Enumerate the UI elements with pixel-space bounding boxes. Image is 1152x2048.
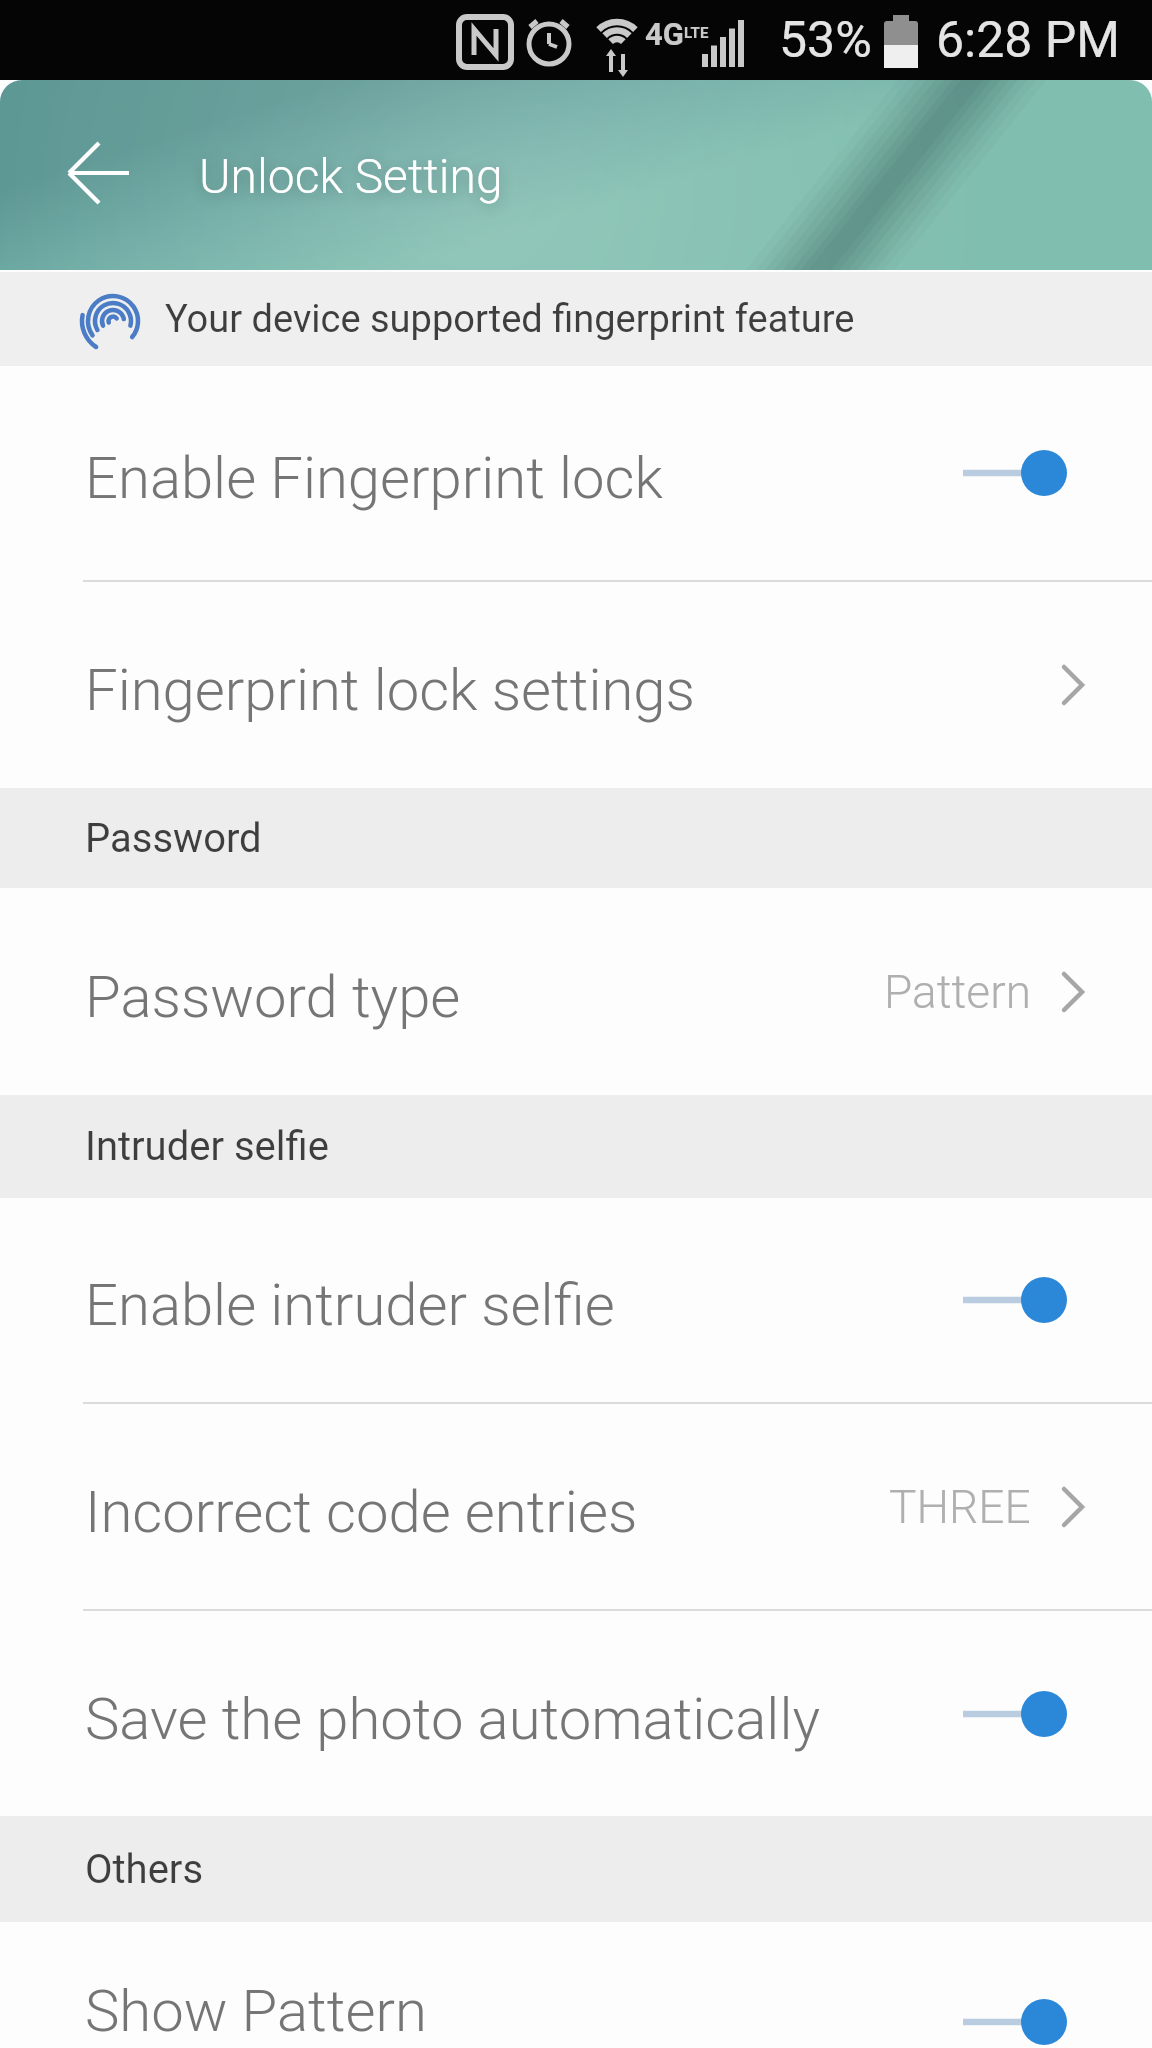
staticText: Fingerprint lock settings: [85, 656, 695, 724]
staticText: Enable intruder selfie: [85, 1271, 615, 1339]
staticText: Password type: [85, 963, 461, 1031]
button[interactable]: [963, 446, 1069, 500]
button[interactable]: Show Pattern: [0, 1922, 1152, 2048]
staticText: Your device supported fingerprint featur…: [165, 297, 855, 342]
staticText: Password: [85, 815, 262, 862]
staticText: Pattern: [884, 965, 1031, 1019]
staticText: Enable Fingerprint lock: [85, 444, 663, 512]
staticText: THREE: [889, 1480, 1031, 1534]
button[interactable]: Enable Fingerprint lock: [0, 366, 1152, 580]
button[interactable]: Save the photo automatically: [0, 1611, 1152, 1816]
staticText: Intruder selfie: [85, 1123, 329, 1170]
staticText: 6:28 PM: [936, 11, 1121, 70]
staticText: 53%: [779, 11, 872, 70]
button[interactable]: Password type: [0, 888, 1152, 1095]
staticText: Others: [85, 1846, 204, 1893]
button[interactable]: [0, 80, 160, 270]
staticText: 4G: [645, 16, 684, 52]
staticText: Unlock Setting: [199, 148, 503, 204]
button[interactable]: [963, 1273, 1069, 1327]
button[interactable]: Enable intruder selfie: [0, 1198, 1152, 1402]
staticText: Incorrect code entries: [85, 1478, 638, 1546]
button[interactable]: Incorrect code entries: [0, 1404, 1152, 1609]
button[interactable]: Fingerprint lock settings: [0, 582, 1152, 788]
staticText: Show Pattern: [85, 1977, 427, 2045]
staticText: LTE: [684, 24, 709, 42]
button[interactable]: [963, 1687, 1069, 1741]
staticText: Save the photo automatically: [85, 1685, 820, 1753]
